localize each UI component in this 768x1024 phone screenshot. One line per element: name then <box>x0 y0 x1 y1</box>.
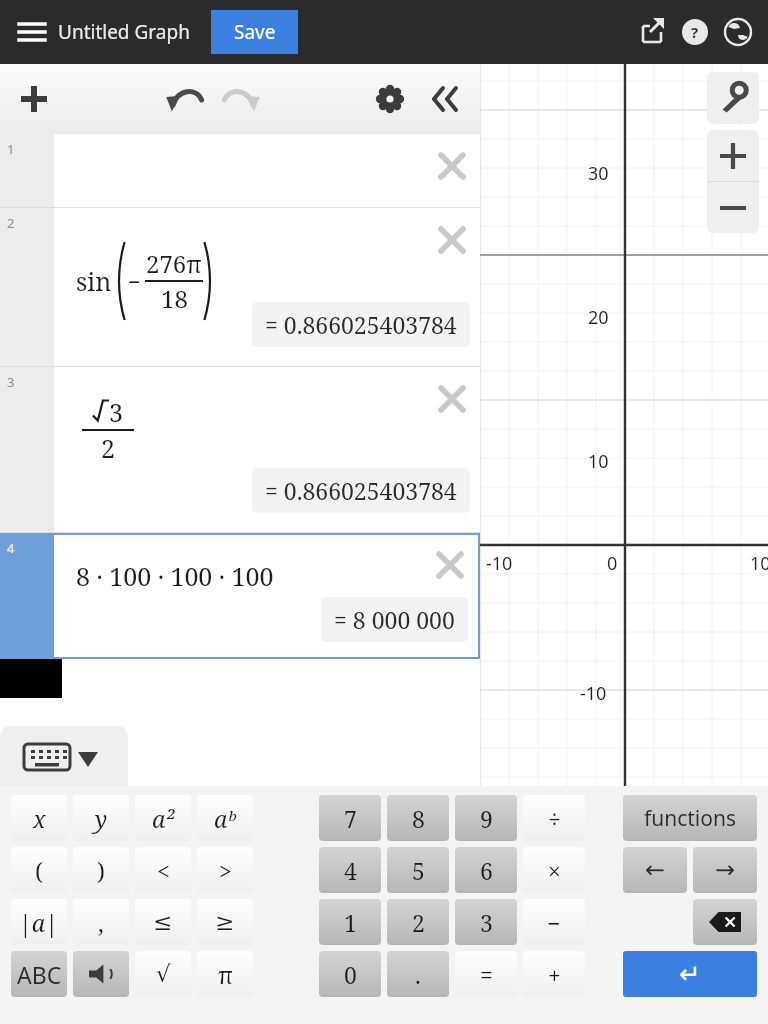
staticText: 6 <box>480 855 493 886</box>
button[interactable]: Undo <box>160 73 212 125</box>
button[interactable]: ≤ <box>135 899 191 945</box>
button[interactable]: < <box>135 847 191 893</box>
staticText: ? <box>691 22 699 42</box>
staticText: -10 <box>580 681 607 706</box>
staticText: ) <box>97 855 105 886</box>
staticText: 9 <box>480 803 493 834</box>
button[interactable]: > <box>197 847 253 893</box>
button[interactable]: y <box>73 795 129 841</box>
button[interactable]: Settings <box>364 73 416 125</box>
staticText: 0 <box>344 959 357 990</box>
button[interactable]: Language <box>716 10 760 54</box>
button[interactable]: Delete expression <box>430 545 470 585</box>
staticText: < <box>157 855 170 886</box>
staticText: ← <box>645 856 666 884</box>
button[interactable]: 2 <box>0 208 480 366</box>
button[interactable]: a² <box>135 795 191 841</box>
button[interactable]: Redo <box>214 73 266 125</box>
staticText: . <box>415 959 421 990</box>
button[interactable]: Zoom in <box>707 130 759 181</box>
staticText: 18 <box>161 282 188 315</box>
staticText: 1 <box>344 907 357 938</box>
button[interactable]: Enter <box>623 951 757 997</box>
button[interactable]: Share <box>630 10 674 54</box>
other: Audio trace <box>73 951 129 997</box>
button[interactable]: ≥ <box>197 899 253 945</box>
staticText: x <box>33 803 46 834</box>
button[interactable]: π <box>197 951 253 997</box>
button[interactable]: ABC <box>11 951 67 997</box>
button[interactable]: ( <box>11 847 67 893</box>
staticText: 20 <box>588 305 609 330</box>
staticText: × <box>548 855 561 886</box>
button[interactable]: 6 <box>455 847 517 893</box>
button[interactable]: Delete expression <box>432 379 472 419</box>
button[interactable]: aᵇ <box>197 795 253 841</box>
staticText: 276π <box>146 247 202 280</box>
button[interactable]: 7 <box>319 795 381 841</box>
button[interactable]: ) <box>73 847 129 893</box>
button[interactable]: 3 <box>0 367 480 532</box>
button[interactable]: × <box>523 847 585 893</box>
staticText: 3 <box>109 395 123 429</box>
staticText: ↵ <box>679 959 701 989</box>
button[interactable]: Graph settings <box>707 72 759 124</box>
button[interactable]: ← <box>623 847 687 893</box>
staticText: sin <box>76 264 112 298</box>
button[interactable]: Zoom out <box>707 182 759 233</box>
staticText: √ <box>156 961 171 988</box>
staticText: 3 <box>7 373 15 391</box>
button[interactable]: √ <box>135 951 191 997</box>
staticText: 4 <box>344 855 357 886</box>
button[interactable]: Backspace <box>693 899 757 945</box>
button[interactable]: functions <box>623 795 757 841</box>
staticText: aᵇ <box>214 803 236 834</box>
button[interactable]: Delete expression <box>432 146 472 186</box>
button[interactable]: 0 <box>319 951 381 997</box>
button[interactable]: 1 <box>319 899 381 945</box>
button[interactable]: 8 <box>387 795 449 841</box>
button[interactable]: → <box>693 847 757 893</box>
button[interactable]: 9 <box>455 795 517 841</box>
button[interactable]: = <box>455 951 517 997</box>
button[interactable]: |a| <box>11 899 67 945</box>
button[interactable]: 5 <box>387 847 449 893</box>
button[interactable]: Collapse panel <box>418 73 470 125</box>
button[interactable]: 4 <box>0 533 480 659</box>
staticText: = 0.866025403784 <box>265 309 457 340</box>
button[interactable]: Delete expression <box>432 220 472 260</box>
staticText: ≤ <box>153 909 173 936</box>
button[interactable]: 3 <box>455 899 517 945</box>
staticText: functions <box>644 804 737 833</box>
button[interactable]: 2 <box>387 899 449 945</box>
button[interactable]: Add expression <box>8 73 60 125</box>
button[interactable]: Help <box>673 10 717 54</box>
staticText: = 8 000 000 <box>334 604 455 635</box>
staticText: 0 <box>607 551 618 576</box>
button[interactable]: − <box>523 899 585 945</box>
staticText: , <box>98 907 104 938</box>
staticText: y <box>95 803 108 834</box>
staticText: 2 <box>7 214 15 232</box>
button[interactable]: Save <box>211 10 298 54</box>
staticText: − <box>547 907 561 938</box>
staticText: 4 <box>7 539 15 557</box>
button[interactable]: + <box>523 951 585 997</box>
button[interactable]: ÷ <box>523 795 585 841</box>
button[interactable]: , <box>73 899 129 945</box>
button[interactable]: 1 <box>0 134 480 207</box>
button[interactable]: x <box>11 795 67 841</box>
other: Backspace <box>693 899 757 945</box>
staticText: + <box>548 959 561 990</box>
staticText: ABC <box>17 959 62 990</box>
button[interactable]: Audio trace <box>73 951 129 997</box>
button[interactable]: Keyboard <box>0 726 128 786</box>
staticText: 5 <box>412 855 425 886</box>
staticText: 2 <box>412 907 425 938</box>
staticText: → <box>715 856 736 884</box>
staticText: = <box>480 959 493 990</box>
button[interactable]: Menu <box>8 8 56 56</box>
button[interactable]: . <box>387 951 449 997</box>
button[interactable]: 4 <box>319 847 381 893</box>
staticText: > <box>219 855 232 886</box>
